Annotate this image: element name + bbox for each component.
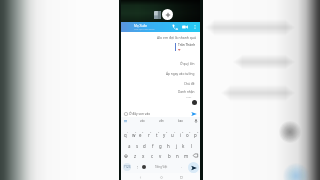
button[interactable]: z xyxy=(132,150,139,161)
button[interactable]: Backspace xyxy=(191,150,200,161)
button[interactable]: r xyxy=(145,129,152,140)
staticText: e xyxy=(139,132,142,138)
button[interactable]: ?123 xyxy=(123,163,131,171)
button[interactable]: Shift xyxy=(121,150,130,161)
staticText: x xyxy=(142,153,145,159)
button[interactable]: Symbols xyxy=(135,165,139,169)
button[interactable]: Áp ngay vào tường xyxy=(166,72,195,76)
staticText: d xyxy=(143,143,146,149)
staticText: 0 xyxy=(197,131,199,134)
staticText: a xyxy=(128,143,131,149)
button[interactable]: m xyxy=(183,150,190,161)
staticText: t xyxy=(156,132,158,138)
button[interactable]: i xyxy=(177,129,184,140)
staticText: 3 xyxy=(142,131,144,134)
staticText: h xyxy=(167,143,170,149)
button[interactable]: k xyxy=(180,140,187,151)
button[interactable]: Emoji keyboard xyxy=(142,165,146,169)
staticText: 2 xyxy=(135,131,137,134)
button[interactable]: Chủ đề xyxy=(184,82,195,86)
button[interactable]: y xyxy=(161,129,168,140)
button[interactable]: b xyxy=(166,150,173,161)
button[interactable]: l xyxy=(188,140,195,151)
button[interactable]: Mẹ Xuân xyxy=(121,22,200,32)
staticText: . xyxy=(181,165,182,169)
button[interactable]: w xyxy=(130,129,137,140)
button[interactable]: q xyxy=(122,129,129,140)
staticText: 7 xyxy=(174,131,176,134)
staticText: y xyxy=(163,132,166,138)
button[interactable]: g xyxy=(157,140,164,151)
staticText: p xyxy=(194,132,197,138)
button[interactable]: s xyxy=(134,140,141,151)
staticText: v xyxy=(159,153,162,159)
staticText: f xyxy=(152,143,154,149)
button[interactable]: Alo em đợi là nhanh quá xyxy=(157,35,196,40)
staticText: Truy cập 3 giờ trước xyxy=(134,28,155,31)
staticText: 4 xyxy=(150,131,152,134)
button[interactable]: Profile xyxy=(192,100,197,105)
button[interactable]: v xyxy=(157,150,164,161)
button[interactable]: t xyxy=(153,129,160,140)
staticText: l xyxy=(191,143,193,149)
staticText: 8 xyxy=(182,131,184,134)
staticText: 5 xyxy=(158,131,160,134)
button[interactable]: j xyxy=(173,140,180,151)
button[interactable]: Danh nhận xyxy=(178,90,195,94)
staticText: vào xyxy=(140,119,145,123)
staticText: k xyxy=(182,143,185,149)
button[interactable]: d xyxy=(141,140,148,151)
staticText: c xyxy=(151,153,154,159)
staticText: ❤ xyxy=(178,48,181,51)
button[interactable]: a xyxy=(126,140,133,151)
staticText: Mẹ Xuân xyxy=(134,24,148,28)
button[interactable]: Video call xyxy=(181,23,189,31)
staticText: o xyxy=(186,132,189,138)
staticText: m xyxy=(184,153,189,159)
staticText: Trần Thành xyxy=(178,43,196,47)
staticText: r xyxy=(148,132,150,138)
button[interactable]: c xyxy=(149,150,156,161)
button[interactable]: f xyxy=(149,140,156,151)
staticText: z xyxy=(134,153,137,159)
button[interactable]: p xyxy=(192,129,199,140)
staticText: n xyxy=(176,153,179,159)
button[interactable]: Trần Thành xyxy=(175,43,196,51)
staticText: vẫn xyxy=(159,119,164,123)
button[interactable]: h xyxy=(165,140,172,151)
button[interactable]: e xyxy=(137,129,144,140)
button[interactable]: u xyxy=(169,129,176,140)
staticText: 9 xyxy=(189,131,191,134)
button[interactable]: Send xyxy=(188,162,199,173)
button[interactable]: Recent apps xyxy=(179,175,183,179)
staticText: Ở đây son vào xyxy=(129,112,151,116)
button[interactable]: Send xyxy=(190,110,197,117)
staticText: w xyxy=(132,132,136,138)
staticText: j xyxy=(176,143,178,149)
staticText: 6 xyxy=(166,131,168,134)
staticText: u xyxy=(171,132,174,138)
button[interactable]: Keyboard settings xyxy=(123,119,127,123)
button[interactable]: Ở quý lớn xyxy=(180,62,195,66)
button[interactable]: Emoji xyxy=(123,111,128,116)
staticText: g xyxy=(159,143,162,149)
button[interactable]: Home xyxy=(159,175,163,179)
button[interactable]: x xyxy=(140,150,147,161)
button[interactable]: Voice input xyxy=(194,119,198,123)
staticText: b xyxy=(168,153,171,159)
staticText: bao xyxy=(178,119,183,123)
staticText: i xyxy=(180,132,182,138)
staticText: ?123 xyxy=(124,165,131,169)
button[interactable]: Add xyxy=(162,9,173,20)
button[interactable]: Back xyxy=(138,175,142,179)
staticText: 1 xyxy=(127,131,129,134)
button[interactable]: n xyxy=(174,150,181,161)
button[interactable]: More options xyxy=(191,23,199,31)
button[interactable]: o xyxy=(184,129,191,140)
staticText: s xyxy=(136,143,139,149)
staticText: 17:21 xyxy=(186,96,192,99)
button[interactable]: Tiếng Việt xyxy=(155,165,168,169)
button[interactable]: Call xyxy=(171,23,179,31)
button[interactable]: Preview xyxy=(154,11,161,19)
staticText: q xyxy=(124,132,127,138)
